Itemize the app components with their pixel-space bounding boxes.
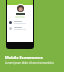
staticText: Lorem ipsum dolor sit amet consectetur (5, 61, 54, 65)
staticText: Mobile Ecommerce (5, 55, 43, 60)
